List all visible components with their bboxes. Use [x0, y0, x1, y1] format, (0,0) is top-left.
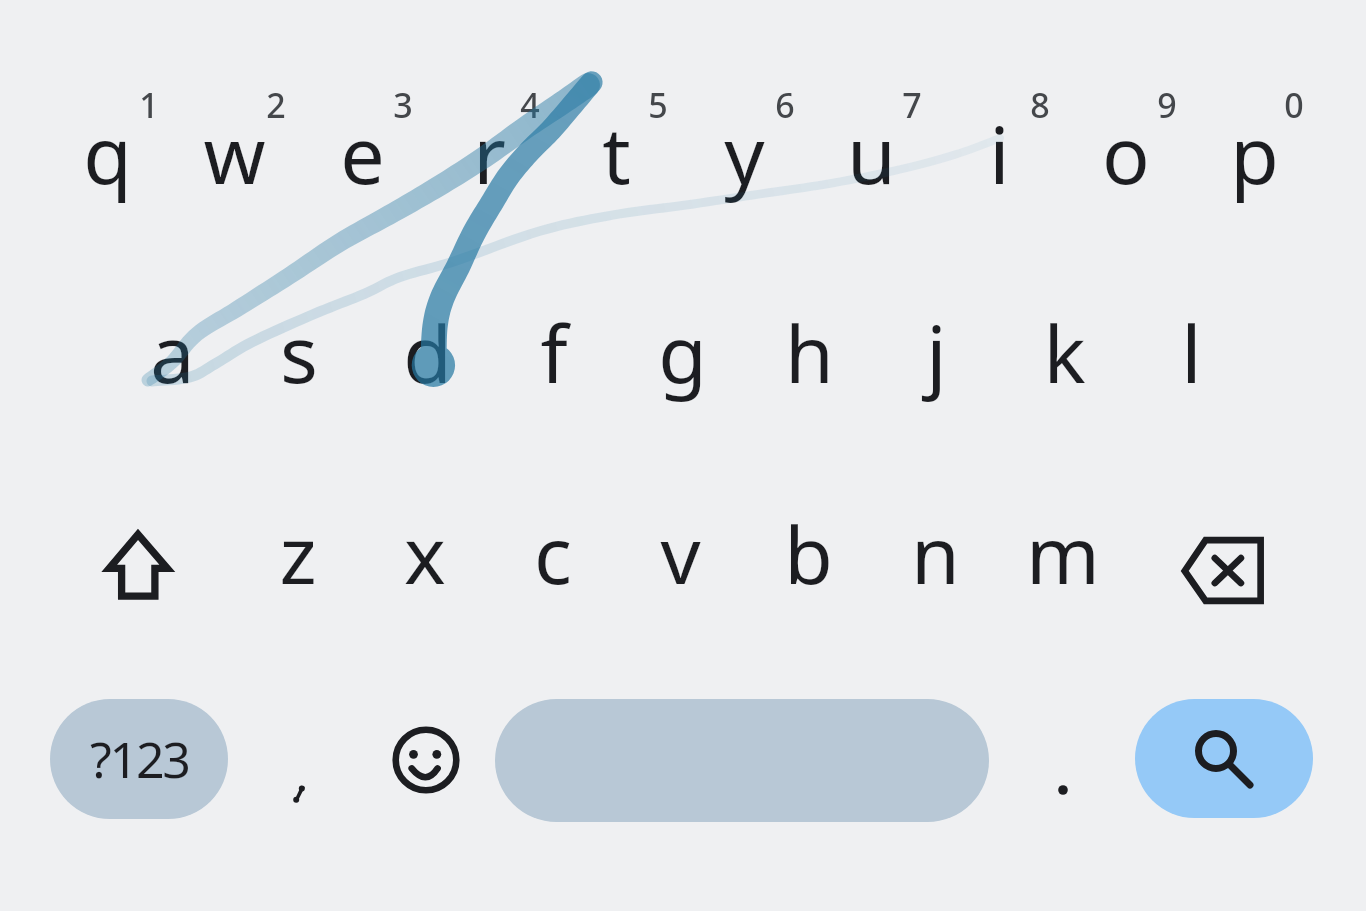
- staticText: z: [279, 500, 317, 608]
- button[interactable]: n: [835, 500, 1035, 619]
- button[interactable]: 0: [1194, 82, 1366, 133]
- staticText: ?123: [90, 725, 189, 793]
- staticText: c: [534, 500, 572, 608]
- staticText: 2: [266, 82, 286, 128]
- staticText: n: [911, 500, 960, 608]
- button[interactable]: 4: [430, 82, 630, 133]
- staticText: r: [473, 100, 506, 208]
- staticText: o: [1102, 100, 1150, 208]
- staticText: l: [1181, 299, 1202, 407]
- button[interactable]: 1: [49, 82, 249, 133]
- button[interactable]: r: [389, 100, 589, 219]
- button[interactable]: o: [1026, 100, 1226, 219]
- staticText: j: [926, 299, 947, 407]
- button[interactable]: Shift: [74, 501, 202, 629]
- button[interactable]: m: [963, 500, 1163, 619]
- staticText: 8: [1030, 82, 1050, 128]
- staticText: t: [602, 100, 631, 208]
- staticText: e: [340, 100, 385, 208]
- button[interactable]: j: [836, 299, 1036, 418]
- button[interactable]: 5: [558, 82, 758, 133]
- staticText: a: [150, 299, 195, 407]
- button[interactable]: d: [327, 299, 527, 418]
- staticText: s: [280, 299, 318, 407]
- button[interactable]: z: [198, 500, 398, 619]
- button[interactable]: c: [453, 500, 653, 619]
- button[interactable]: g: [582, 299, 782, 418]
- button[interactable]: x: [325, 500, 525, 619]
- staticText: k: [1043, 299, 1086, 407]
- button[interactable]: l: [1091, 299, 1291, 418]
- staticText: i: [989, 100, 1010, 208]
- staticText: q: [83, 100, 132, 208]
- button[interactable]: t: [516, 100, 716, 219]
- staticText: p: [1230, 100, 1279, 208]
- button[interactable]: 3: [303, 82, 503, 133]
- staticText: 5: [648, 82, 668, 128]
- staticText: v: [660, 500, 701, 608]
- button[interactable]: Search: [1135, 699, 1313, 818]
- button[interactable]: q: [7, 100, 207, 219]
- staticText: x: [404, 500, 446, 608]
- staticText: f: [540, 299, 568, 407]
- staticText: g: [658, 299, 707, 407]
- button[interactable]: u: [771, 100, 971, 219]
- button[interactable]: f: [454, 299, 654, 418]
- button[interactable]: 9: [1067, 82, 1267, 133]
- staticText: 7: [902, 82, 922, 128]
- staticText: b: [784, 500, 833, 608]
- button[interactable]: e: [262, 100, 462, 219]
- button[interactable]: h: [709, 299, 909, 418]
- button[interactable]: ?123: [50, 699, 228, 819]
- button[interactable]: Space: [495, 699, 989, 822]
- staticText: u: [847, 100, 896, 208]
- staticText: w: [203, 100, 266, 208]
- button[interactable]: b: [708, 500, 908, 619]
- button[interactable]: s: [199, 299, 399, 418]
- staticText: 6: [775, 82, 795, 128]
- button[interactable]: v: [580, 500, 780, 619]
- button[interactable]: y: [644, 100, 844, 219]
- button[interactable]: k: [964, 299, 1164, 418]
- staticText: 9: [1157, 82, 1177, 128]
- button[interactable]: Comma: [235, 730, 363, 858]
- button[interactable]: 2: [176, 82, 376, 133]
- button[interactable]: Emoji: [381, 715, 471, 805]
- staticText: h: [785, 299, 834, 407]
- button[interactable]: i: [899, 100, 1099, 219]
- staticText: 3: [393, 82, 413, 128]
- button[interactable]: 7: [812, 82, 1012, 133]
- staticText: y: [724, 100, 765, 208]
- button[interactable]: w: [134, 100, 334, 219]
- staticText: m: [1026, 500, 1100, 608]
- staticText: 1: [139, 82, 159, 128]
- button[interactable]: a: [72, 299, 272, 418]
- staticText: d: [403, 299, 452, 407]
- button[interactable]: 8: [940, 82, 1140, 133]
- staticText: 4: [520, 82, 540, 128]
- button[interactable]: Backspace: [1159, 506, 1287, 634]
- button[interactable]: 6: [685, 82, 885, 133]
- button[interactable]: p: [1154, 100, 1354, 219]
- button[interactable]: Period: [999, 726, 1127, 854]
- staticText: 0: [1284, 82, 1304, 128]
